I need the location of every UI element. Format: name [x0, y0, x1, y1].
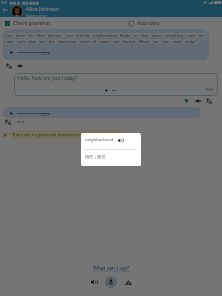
button[interactable]: What can I say?	[93, 265, 130, 272]
staticText: Johnson,	[48, 33, 63, 38]
staticText: friendly	[77, 33, 90, 38]
staticText: into	[39, 39, 46, 44]
staticText: space	[100, 39, 110, 44]
staticText: It's	[29, 33, 34, 38]
staticText: to	[134, 33, 138, 38]
staticText: Alice Johnson	[26, 5, 60, 12]
staticText: chat	[141, 33, 149, 38]
button[interactable]: world	[80, 39, 90, 44]
staticText: Hey	[6, 33, 13, 38]
staticText: there!	[16, 33, 26, 38]
button[interactable]: Mike	[37, 33, 45, 38]
button[interactable]: and	[113, 39, 120, 44]
staticText: Mike	[37, 33, 45, 38]
button[interactable]: to	[134, 33, 138, 38]
button[interactable]: stars	[6, 39, 15, 44]
button[interactable]: Check grammar	[5, 20, 51, 27]
staticText: 00:03	[41, 113, 50, 117]
staticText: mind	[173, 39, 182, 44]
button[interactable]: your	[66, 33, 74, 38]
staticText: There are no grammar mistakes in the giv…	[12, 132, 120, 138]
button[interactable]: beyond	[123, 39, 136, 44]
staticText: neighborhood	[93, 33, 117, 38]
staticText: world	[80, 39, 90, 44]
button[interactable]: into	[39, 39, 46, 44]
staticText: about	[152, 33, 162, 38]
button[interactable]: today?	[185, 39, 196, 44]
staticText: Astronomer	[26, 13, 48, 18]
staticText: Auto-play	[137, 20, 160, 27]
button[interactable]: your	[162, 39, 170, 44]
button[interactable]: chat	[141, 33, 149, 38]
staticText: text	[17, 119, 25, 124]
button[interactable]: the	[49, 39, 55, 44]
staticText: under	[186, 33, 196, 38]
staticText: What's	[139, 39, 151, 44]
button[interactable]: Score	[183, 97, 190, 104]
button[interactable]: Microphone	[105, 276, 117, 288]
staticText: dive	[29, 39, 36, 44]
button[interactable]: Let's	[18, 39, 26, 44]
button[interactable]: Translate	[205, 97, 212, 104]
staticText: 00:03	[205, 88, 214, 92]
button[interactable]: the	[199, 33, 205, 38]
staticText: fascinating	[58, 39, 77, 44]
button[interactable]: there!	[16, 33, 26, 38]
staticText: your	[66, 33, 74, 38]
staticText: the	[199, 33, 205, 38]
button[interactable]: Show text	[194, 97, 201, 104]
button[interactable]: about	[152, 33, 162, 38]
staticText: 00:12	[41, 52, 50, 56]
button[interactable]: Johnson,	[48, 33, 63, 38]
button[interactable]: mind	[173, 39, 182, 44]
button[interactable]: everything	[165, 33, 183, 38]
button[interactable]: Play	[7, 109, 15, 117]
button[interactable]: under	[186, 33, 196, 38]
staticText: beyond	[123, 39, 136, 44]
button[interactable]: Pronounce	[117, 137, 123, 143]
button[interactable]: Translate	[5, 62, 12, 69]
button[interactable]: Keyboard	[121, 275, 135, 289]
button[interactable]: of	[93, 39, 97, 44]
button[interactable]: It's	[29, 33, 34, 38]
button[interactable]: space	[100, 39, 110, 44]
staticText: Let's	[18, 39, 26, 44]
button[interactable]: friendly	[77, 33, 90, 38]
staticText: Check grammar	[13, 20, 51, 27]
staticText: 街区；附近	[85, 154, 106, 159]
button[interactable]: Show text	[16, 62, 23, 69]
staticText: Ready	[120, 33, 131, 38]
staticText: 9:41 ■■ ■	[1, 0, 20, 5]
button[interactable]: Speaker	[87, 275, 101, 289]
staticText: the	[49, 39, 55, 44]
staticText: your	[162, 39, 170, 44]
button[interactable]: Back	[0, 5, 10, 15]
button[interactable]: Auto-play	[129, 20, 160, 27]
button[interactable]: Play	[7, 48, 15, 56]
button[interactable]: neighborhood	[93, 33, 117, 38]
button[interactable]: What's	[139, 39, 151, 44]
staticText: today?	[185, 39, 196, 44]
staticText: stars	[6, 39, 15, 44]
staticText: Hello, how are you today?	[17, 75, 78, 82]
button[interactable]: Translate	[4, 118, 11, 125]
staticText: and	[113, 39, 120, 44]
staticText: What can I say?	[93, 265, 130, 272]
staticText: everything	[165, 33, 183, 38]
staticText: on	[154, 39, 159, 44]
button[interactable]: dive	[29, 39, 36, 44]
button[interactable]: Ready	[120, 33, 131, 38]
staticText: of	[93, 39, 97, 44]
button[interactable]: Play	[102, 86, 110, 94]
button[interactable]: Hello, how are you today?	[14, 73, 218, 96]
staticText: ■■ ■■■	[22, 0, 39, 5]
staticText: neighborhood	[85, 137, 114, 143]
button[interactable]: Hey	[6, 33, 13, 38]
button[interactable]: fascinating	[58, 39, 77, 44]
button[interactable]: Play	[3, 107, 201, 118]
button[interactable]: on	[154, 39, 159, 44]
